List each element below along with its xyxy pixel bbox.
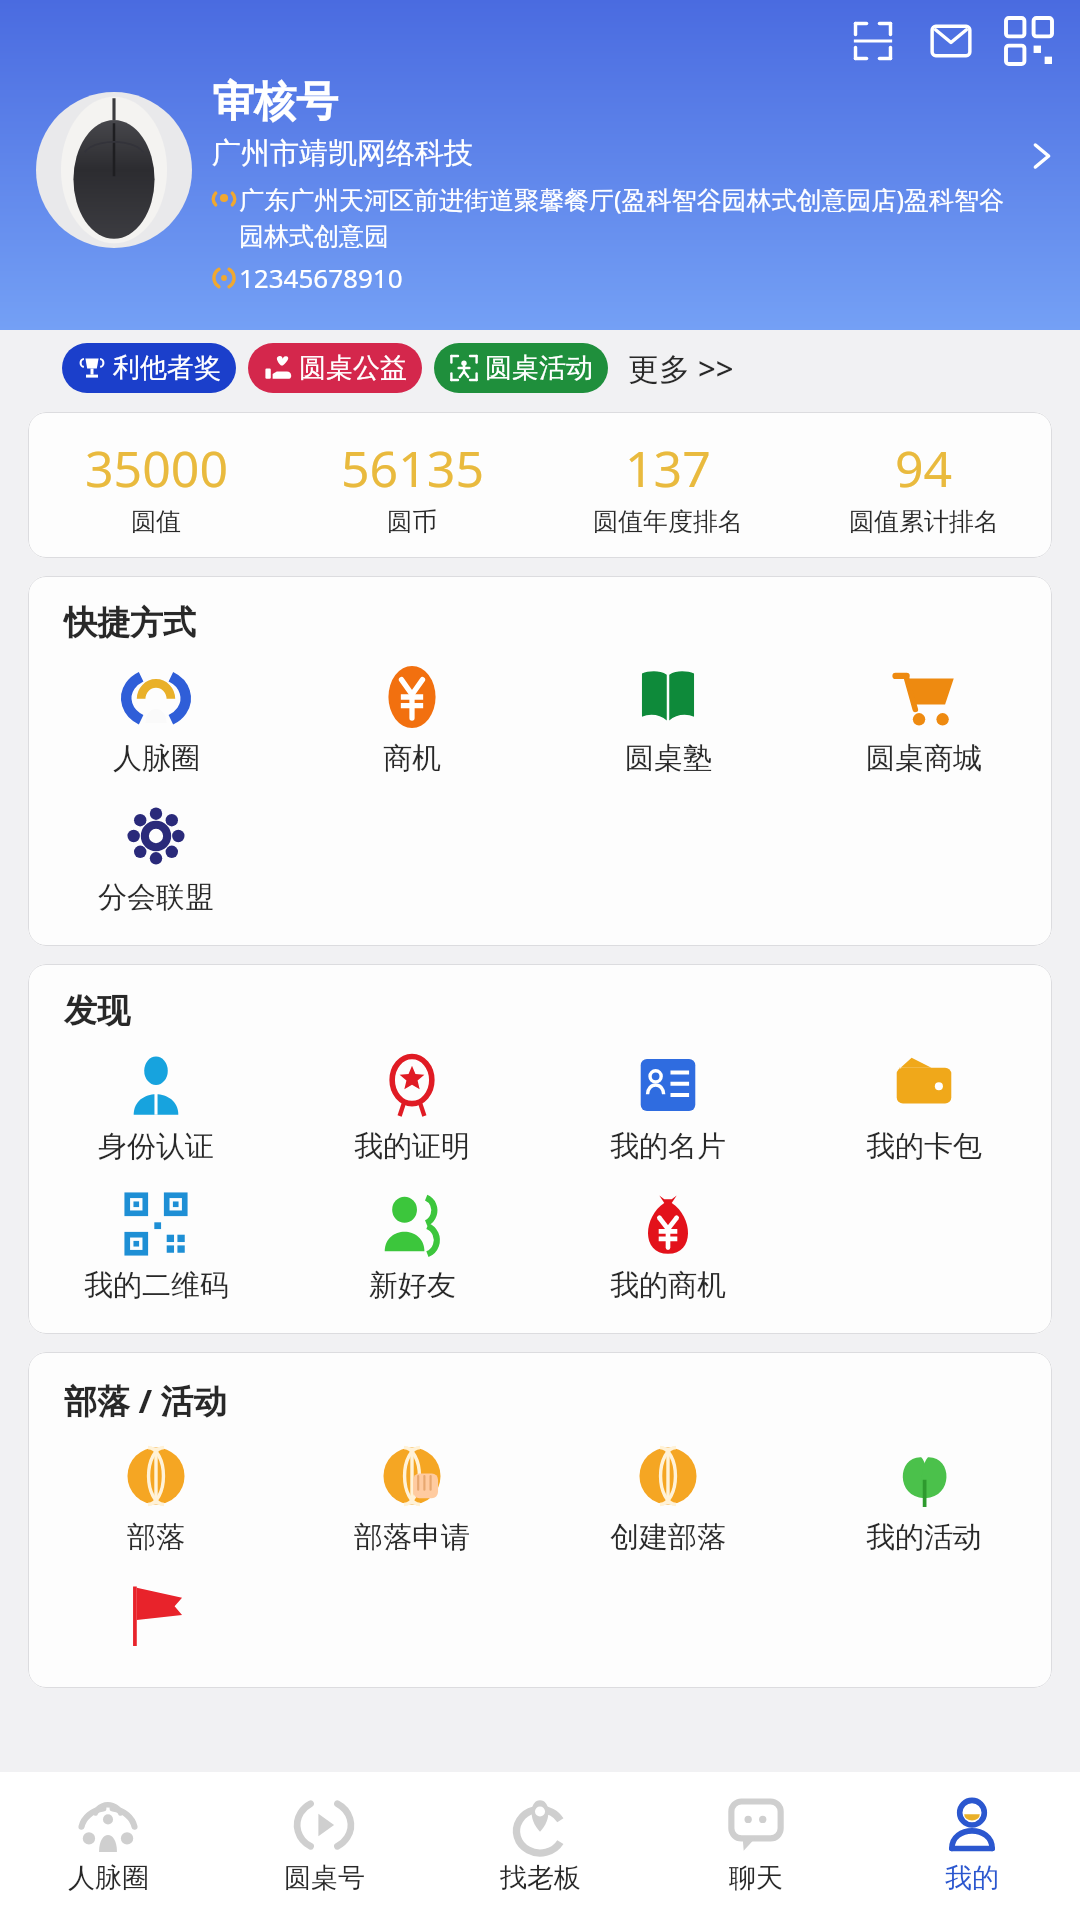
button[interactable]: 审核号 xyxy=(36,76,1064,295)
staticText: 我的名片 xyxy=(610,1128,726,1165)
staticText: 部落申请 xyxy=(354,1519,470,1556)
staticText: 35000 xyxy=(85,434,228,502)
staticText: 圆桌活动 xyxy=(485,351,593,385)
staticText: 审核号 xyxy=(212,76,338,129)
staticText: 我的 xyxy=(945,1861,999,1895)
button[interactable]: 圆桌塾 xyxy=(540,660,796,783)
staticText: 圆桌公益 xyxy=(299,351,407,385)
staticText: 分会联盟 xyxy=(98,879,214,916)
button[interactable]: 我的证明 xyxy=(284,1048,540,1171)
staticText: 56135 xyxy=(341,434,484,502)
staticText: 快捷方式 xyxy=(64,602,196,644)
staticText: 部落 / 活动 xyxy=(64,1378,227,1423)
button[interactable]: 圆桌公益 xyxy=(248,343,422,393)
staticText: 找老板 xyxy=(500,1861,581,1895)
staticText: 12345678910 xyxy=(239,260,403,295)
button[interactable]: 我的活动 xyxy=(796,1439,1052,1562)
button[interactable]: 新好友 xyxy=(284,1187,540,1310)
staticText: 部落 xyxy=(127,1519,185,1556)
staticText: 更多 >> xyxy=(628,347,734,389)
button[interactable]: 分会联盟 xyxy=(28,799,284,922)
staticText: 我的活动 xyxy=(866,1519,982,1556)
button[interactable]: 人脉圈 xyxy=(28,660,284,783)
staticText: 身份认证 xyxy=(98,1128,214,1165)
staticText: 我的证明 xyxy=(354,1128,470,1165)
staticText: 我的商机 xyxy=(610,1267,726,1304)
staticText: 圆值 xyxy=(131,506,181,537)
button[interactable]: 94 xyxy=(796,434,1052,537)
button[interactable]: Messages xyxy=(924,14,978,68)
button[interactable]: 利他者奖 xyxy=(62,343,236,393)
button[interactable] xyxy=(28,1578,284,1664)
button[interactable]: 创建部落 xyxy=(540,1439,796,1562)
button[interactable]: 更多 >> xyxy=(624,339,738,397)
staticText: 创建部落 xyxy=(610,1519,726,1556)
button[interactable]: 我的 xyxy=(864,1772,1080,1920)
staticText: 人脉圈 xyxy=(113,740,200,777)
button[interactable]: 部落 xyxy=(28,1439,284,1562)
staticText: 聊天 xyxy=(729,1861,783,1895)
staticText: 圆值累计排名 xyxy=(849,506,999,537)
staticText: 新好友 xyxy=(369,1267,456,1304)
button[interactable]: 人脉圈 xyxy=(0,1772,216,1920)
button[interactable]: 聊天 xyxy=(648,1772,864,1920)
staticText: 圆桌号 xyxy=(284,1861,365,1895)
staticText: 我的卡包 xyxy=(866,1128,982,1165)
button[interactable]: 35000 xyxy=(28,434,284,537)
staticText: 广州市靖凯网络科技 xyxy=(212,135,473,172)
staticText: 商机 xyxy=(383,740,441,777)
button[interactable]: 商机 xyxy=(284,660,540,783)
button[interactable]: 56135 xyxy=(284,434,540,537)
button[interactable]: 我的二维码 xyxy=(28,1187,284,1310)
staticText: 发现 xyxy=(64,990,130,1032)
button[interactable]: 137 xyxy=(540,434,796,537)
button[interactable]: 圆桌活动 xyxy=(434,343,608,393)
button[interactable]: 找老板 xyxy=(432,1772,648,1920)
staticText: 137 xyxy=(625,434,711,502)
staticText: 广东广州天河区前进街道聚馨餐厅(盈科智谷园林式创意园店)盈科智谷园林式创意园 xyxy=(239,182,1020,252)
button[interactable]: 我的名片 xyxy=(540,1048,796,1171)
staticText: 人脉圈 xyxy=(68,1861,149,1895)
staticText: 圆桌塾 xyxy=(625,740,712,777)
button[interactable]: QR code xyxy=(1002,14,1056,68)
button[interactable]: 我的商机 xyxy=(540,1187,796,1310)
staticText: 利他者奖 xyxy=(113,351,221,385)
button[interactable]: 身份认证 xyxy=(28,1048,284,1171)
button[interactable]: 我的卡包 xyxy=(796,1048,1052,1171)
staticText: 94 xyxy=(895,434,953,502)
staticText: 圆币 xyxy=(387,506,437,537)
staticText: 我的二维码 xyxy=(84,1267,229,1304)
button[interactable]: 部落申请 xyxy=(284,1439,540,1562)
staticText: 圆桌商城 xyxy=(866,740,982,777)
staticText: 圆值年度排名 xyxy=(593,506,743,537)
button[interactable]: Scan xyxy=(846,14,900,68)
button[interactable]: 圆桌商城 xyxy=(796,660,1052,783)
button[interactable]: 圆桌号 xyxy=(216,1772,432,1920)
